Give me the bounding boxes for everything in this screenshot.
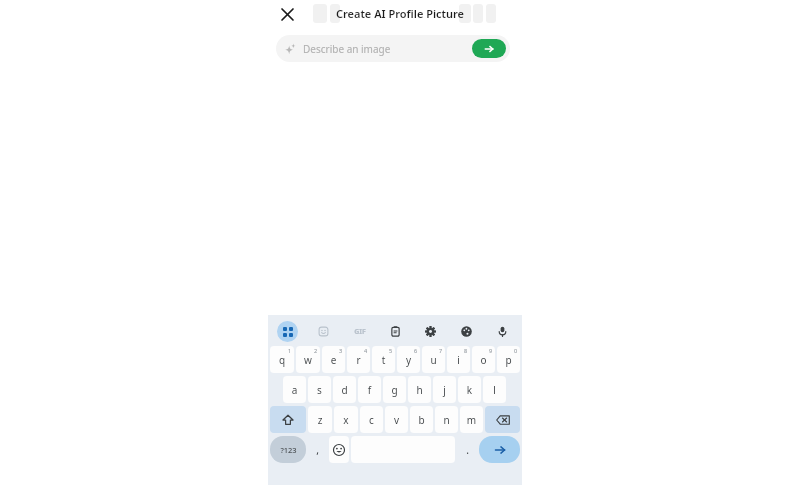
button[interactable]: s [308, 376, 331, 403]
staticText: 7 [439, 347, 443, 354]
staticText: 5 [389, 347, 393, 354]
staticText: f [358, 383, 381, 397]
staticText: r [347, 353, 370, 367]
button[interactable]: t [372, 346, 395, 373]
button[interactable]: y [397, 346, 420, 373]
staticText: p [497, 353, 520, 367]
staticText: 0 [514, 347, 518, 354]
button[interactable]: Shift [270, 406, 306, 433]
button[interactable]: u [422, 346, 445, 373]
staticText: h [408, 383, 431, 397]
staticText: 9 [489, 347, 493, 354]
staticText: k [458, 383, 481, 397]
staticText: t [372, 353, 395, 367]
button[interactable]: c [360, 406, 383, 433]
button[interactable]: w [296, 346, 320, 373]
staticText: a [283, 383, 306, 397]
button[interactable]: Backspace [485, 406, 520, 433]
button[interactable]: Enter [479, 436, 520, 463]
button[interactable]: Themes [456, 321, 477, 342]
button[interactable]: l [483, 376, 506, 403]
button[interactable]: k [458, 376, 481, 403]
button[interactable]: Close [274, 1, 300, 27]
button[interactable]: GIF [349, 321, 370, 342]
staticText: o [472, 353, 495, 367]
button[interactable]: j [433, 376, 456, 403]
button[interactable]: i [447, 346, 470, 373]
button[interactable]: Comma [308, 436, 327, 463]
button[interactable]: Voice input [492, 321, 513, 342]
staticText: g [383, 383, 406, 397]
staticText: q [270, 353, 294, 367]
button[interactable]: Emoji [329, 436, 349, 463]
button[interactable]: z [308, 406, 332, 433]
staticText: m [460, 413, 483, 427]
button[interactable]: p [497, 346, 520, 373]
staticText: . [466, 443, 469, 457]
button[interactable]: Clipboard [385, 321, 406, 342]
staticText: c [360, 413, 383, 427]
staticText: n [435, 413, 458, 427]
staticText: 3 [339, 347, 343, 354]
button[interactable]: Settings [420, 321, 441, 342]
staticText: 4 [364, 347, 368, 354]
button[interactable]: o [472, 346, 495, 373]
button[interactable]: g [383, 376, 406, 403]
button[interactable]: h [408, 376, 431, 403]
staticText: 2 [314, 347, 318, 354]
staticText: s [308, 383, 331, 397]
staticText: GIF [354, 327, 366, 337]
button[interactable]: x [334, 406, 358, 433]
button[interactable]: e [322, 346, 345, 373]
staticText: 8 [464, 347, 468, 354]
staticText: z [308, 413, 332, 427]
button[interactable]: ?123 [270, 436, 306, 463]
staticText: Create AI Profile Picture [0, 6, 800, 21]
button[interactable]: Send [472, 39, 506, 58]
button[interactable]: f [358, 376, 381, 403]
staticText: b [410, 413, 433, 427]
button[interactable]: m [460, 406, 483, 433]
staticText: y [397, 353, 420, 367]
staticText: u [422, 353, 445, 367]
staticText: 6 [414, 347, 418, 354]
button[interactable]: Stickers [313, 321, 334, 342]
staticText: 1 [288, 347, 292, 354]
staticText: e [322, 353, 345, 367]
button[interactable]: b [410, 406, 433, 433]
button[interactable]: a [283, 376, 306, 403]
button[interactable]: Describe an image [276, 35, 510, 62]
staticText: d [333, 383, 356, 397]
button[interactable]: Toolbox [277, 321, 298, 342]
staticText: x [334, 413, 358, 427]
button[interactable]: r [347, 346, 370, 373]
staticText: w [296, 353, 320, 367]
staticText: l [483, 383, 506, 397]
staticText: j [433, 383, 456, 397]
staticText: v [385, 413, 408, 427]
staticText: ?123 [280, 445, 297, 455]
staticText: i [447, 353, 470, 367]
button[interactable]: Period [457, 436, 477, 463]
button[interactable]: q [270, 346, 294, 373]
button[interactable]: v [385, 406, 408, 433]
button[interactable]: n [435, 406, 458, 433]
button[interactable]: d [333, 376, 356, 403]
staticText: Describe an image [303, 42, 472, 56]
staticText: , [316, 443, 319, 457]
